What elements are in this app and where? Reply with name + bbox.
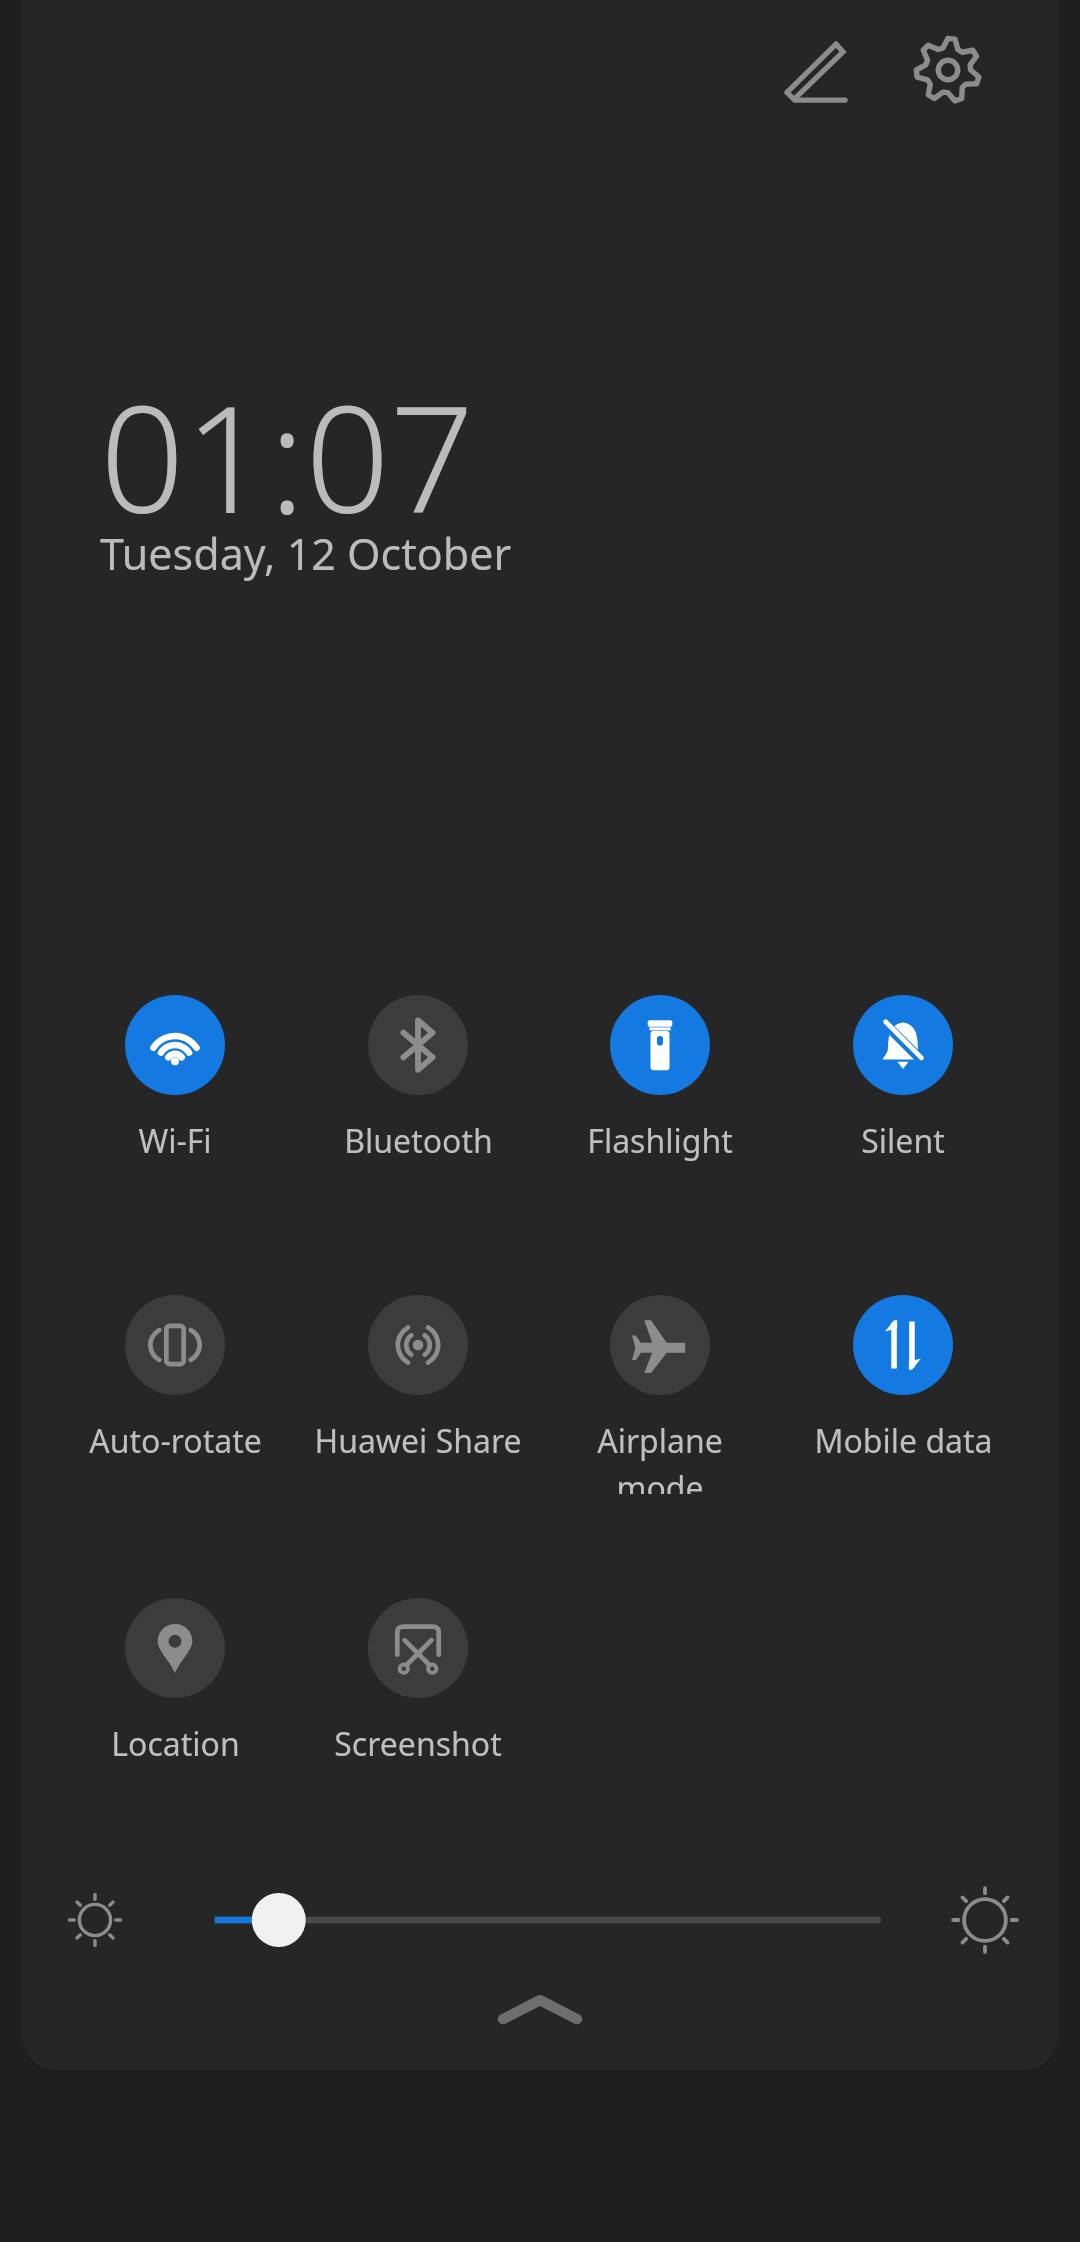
staticText: Bluetooth	[344, 1119, 493, 1163]
button[interactable]: Flashlight	[539, 979, 781, 1194]
button[interactable]: Bluetooth	[297, 979, 539, 1194]
button[interactable]: Edit	[760, 18, 870, 122]
staticText: Airplane mode	[597, 1419, 723, 1494]
button[interactable]: Settings	[893, 18, 1003, 122]
other: High brightness	[950, 1885, 1020, 1955]
button[interactable]: Auto-rotate	[54, 1279, 296, 1494]
button[interactable]: Airplane mode	[539, 1279, 781, 1494]
staticText: Mobile data	[814, 1419, 993, 1463]
staticText: Screenshot	[334, 1722, 502, 1766]
staticText: Flashlight	[587, 1119, 733, 1163]
button[interactable]: Huawei Share	[297, 1279, 539, 1494]
other: Low brightness	[60, 1885, 130, 1955]
button[interactable]: Collapse	[465, 1975, 615, 2045]
staticText: Wi-Fi	[138, 1119, 212, 1163]
staticText: Huawei Share	[314, 1419, 522, 1463]
button[interactable]: Mobile data	[782, 1279, 1024, 1494]
button[interactable]: Screenshot	[297, 1582, 539, 1797]
button[interactable]: Brightness	[150, 1875, 940, 1965]
staticText: 01:07	[100, 355, 475, 557]
staticText: Tuesday, 12 October	[100, 524, 512, 583]
staticText: Location	[111, 1722, 240, 1766]
staticText: Auto-rotate	[89, 1419, 262, 1463]
button[interactable]: Location	[54, 1582, 296, 1797]
staticText: Silent	[861, 1119, 945, 1163]
button[interactable]: Silent	[782, 979, 1024, 1194]
button[interactable]: Wi-Fi	[54, 979, 296, 1194]
